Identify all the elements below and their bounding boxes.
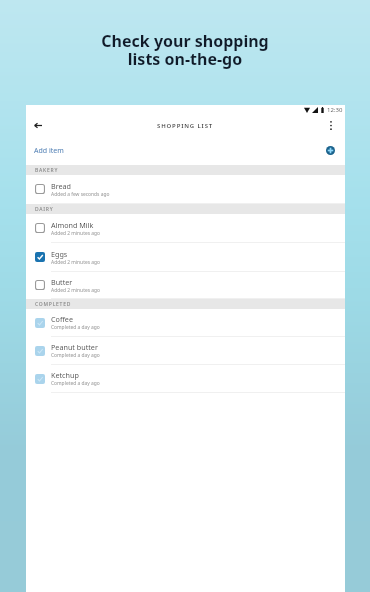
button[interactable]: Butter bbox=[26, 272, 345, 299]
staticText: Added 2 minutes ago bbox=[51, 287, 100, 294]
staticText: SHOPPING LIST bbox=[157, 122, 214, 130]
button[interactable]: Eggs bbox=[26, 243, 345, 272]
staticText: Completed a day ago bbox=[51, 324, 100, 331]
staticText: Butter bbox=[51, 277, 73, 287]
staticText: DAIRY bbox=[35, 206, 54, 213]
staticText: Ketchup bbox=[51, 370, 79, 380]
staticText: Added 2 minutes ago bbox=[51, 230, 100, 237]
staticText: BAKERY bbox=[35, 167, 59, 174]
staticText: Completed a day ago bbox=[51, 352, 100, 359]
staticText: Eggs bbox=[51, 249, 68, 259]
staticText: Coffee bbox=[51, 314, 73, 324]
button[interactable]: Peanut butter bbox=[26, 337, 345, 365]
staticText: Add item bbox=[34, 146, 64, 156]
button[interactable]: Add item bbox=[325, 145, 336, 156]
button[interactable]: Ketchup bbox=[26, 365, 345, 393]
button[interactable]: Almond Milk bbox=[26, 214, 345, 243]
staticText: Check your shopping lists on-the-go bbox=[101, 30, 269, 70]
button[interactable]: Bread bbox=[26, 175, 345, 204]
staticText: Completed a day ago bbox=[51, 380, 100, 387]
button[interactable]: Back bbox=[29, 119, 47, 132]
staticText: Added a few seconds ago bbox=[51, 191, 110, 198]
staticText: Added 2 minutes ago bbox=[51, 259, 100, 266]
staticText: COMPLETED bbox=[35, 301, 72, 308]
staticText: 12:30 bbox=[327, 106, 343, 114]
staticText: Bread bbox=[51, 181, 72, 191]
button[interactable]: More options bbox=[323, 119, 339, 132]
staticText: Peanut butter bbox=[51, 342, 98, 352]
button[interactable]: Add item bbox=[26, 132, 345, 165]
button[interactable]: Coffee bbox=[26, 309, 345, 337]
staticText: Almond Milk bbox=[51, 220, 94, 230]
